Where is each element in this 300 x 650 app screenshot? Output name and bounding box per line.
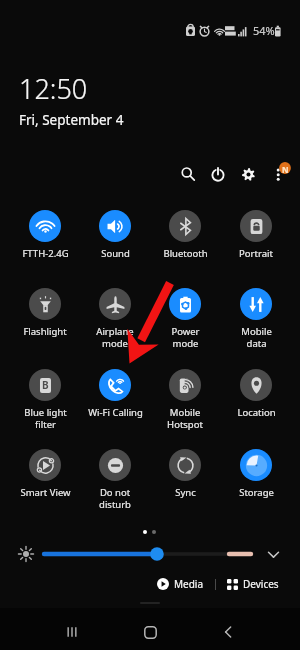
staticText: Bluetooth xyxy=(163,247,208,260)
button[interactable]: Back xyxy=(208,612,248,650)
staticText: Smart View xyxy=(20,486,71,499)
staticText: Flashlight xyxy=(23,325,67,338)
staticText: Wi-Fi Calling xyxy=(88,406,143,419)
staticText: Fri, September 4 xyxy=(19,111,124,129)
button[interactable]: Media xyxy=(153,573,208,595)
button[interactable]: Location xyxy=(240,369,272,401)
staticText: Devices xyxy=(243,577,279,591)
staticText: Mobile Hotspot xyxy=(167,406,203,430)
button[interactable]: Do not disturb xyxy=(99,449,131,481)
staticText: Sound xyxy=(101,247,130,260)
button[interactable]: Devices xyxy=(223,573,283,595)
button[interactable]: Smart View xyxy=(29,449,61,481)
button[interactable]: Sync xyxy=(169,449,201,481)
button[interactable]: Storage xyxy=(240,449,272,481)
button[interactable]: Home xyxy=(130,612,170,650)
staticText: B xyxy=(42,378,49,392)
staticText: N xyxy=(282,164,289,175)
staticText: Location xyxy=(237,406,276,419)
button[interactable]: Mobile data xyxy=(240,288,272,320)
staticText: FTTH-2.4G xyxy=(22,247,69,260)
button[interactable]: Power xyxy=(206,162,230,186)
staticText: Media xyxy=(174,577,204,591)
staticText: Power mode xyxy=(171,325,200,349)
button[interactable]: Power mode xyxy=(169,288,201,320)
button[interactable]: Sound xyxy=(99,210,131,242)
button[interactable]: Flashlight xyxy=(29,288,61,320)
staticText: Do not disturb xyxy=(99,486,131,510)
button[interactable]: Wi-Fi Calling xyxy=(99,369,131,401)
button[interactable]: Portrait xyxy=(240,210,272,242)
staticText: Sync xyxy=(175,486,196,499)
button[interactable]: Mobile Hotspot xyxy=(169,369,201,401)
button[interactable]: Blue light filter xyxy=(29,369,61,401)
staticText: 54% xyxy=(253,23,275,38)
staticText: Portrait xyxy=(239,247,273,260)
button[interactable]: FTTH-2.4G xyxy=(29,210,61,242)
button[interactable]: Airplane mode xyxy=(99,288,131,320)
staticText: 12:50 xyxy=(19,70,88,107)
button[interactable]: Expand brightness xyxy=(263,544,283,564)
staticText: Mobile data xyxy=(241,325,272,349)
button[interactable]: Settings xyxy=(236,162,260,186)
staticText: Airplane mode xyxy=(96,325,134,349)
button[interactable]: Search xyxy=(176,162,200,186)
button[interactable]: Recents xyxy=(52,612,92,650)
staticText: Blue light filter xyxy=(24,406,67,430)
staticText: Storage xyxy=(239,486,274,499)
button[interactable]: More options xyxy=(266,157,294,185)
button[interactable]: Bluetooth xyxy=(169,210,201,242)
